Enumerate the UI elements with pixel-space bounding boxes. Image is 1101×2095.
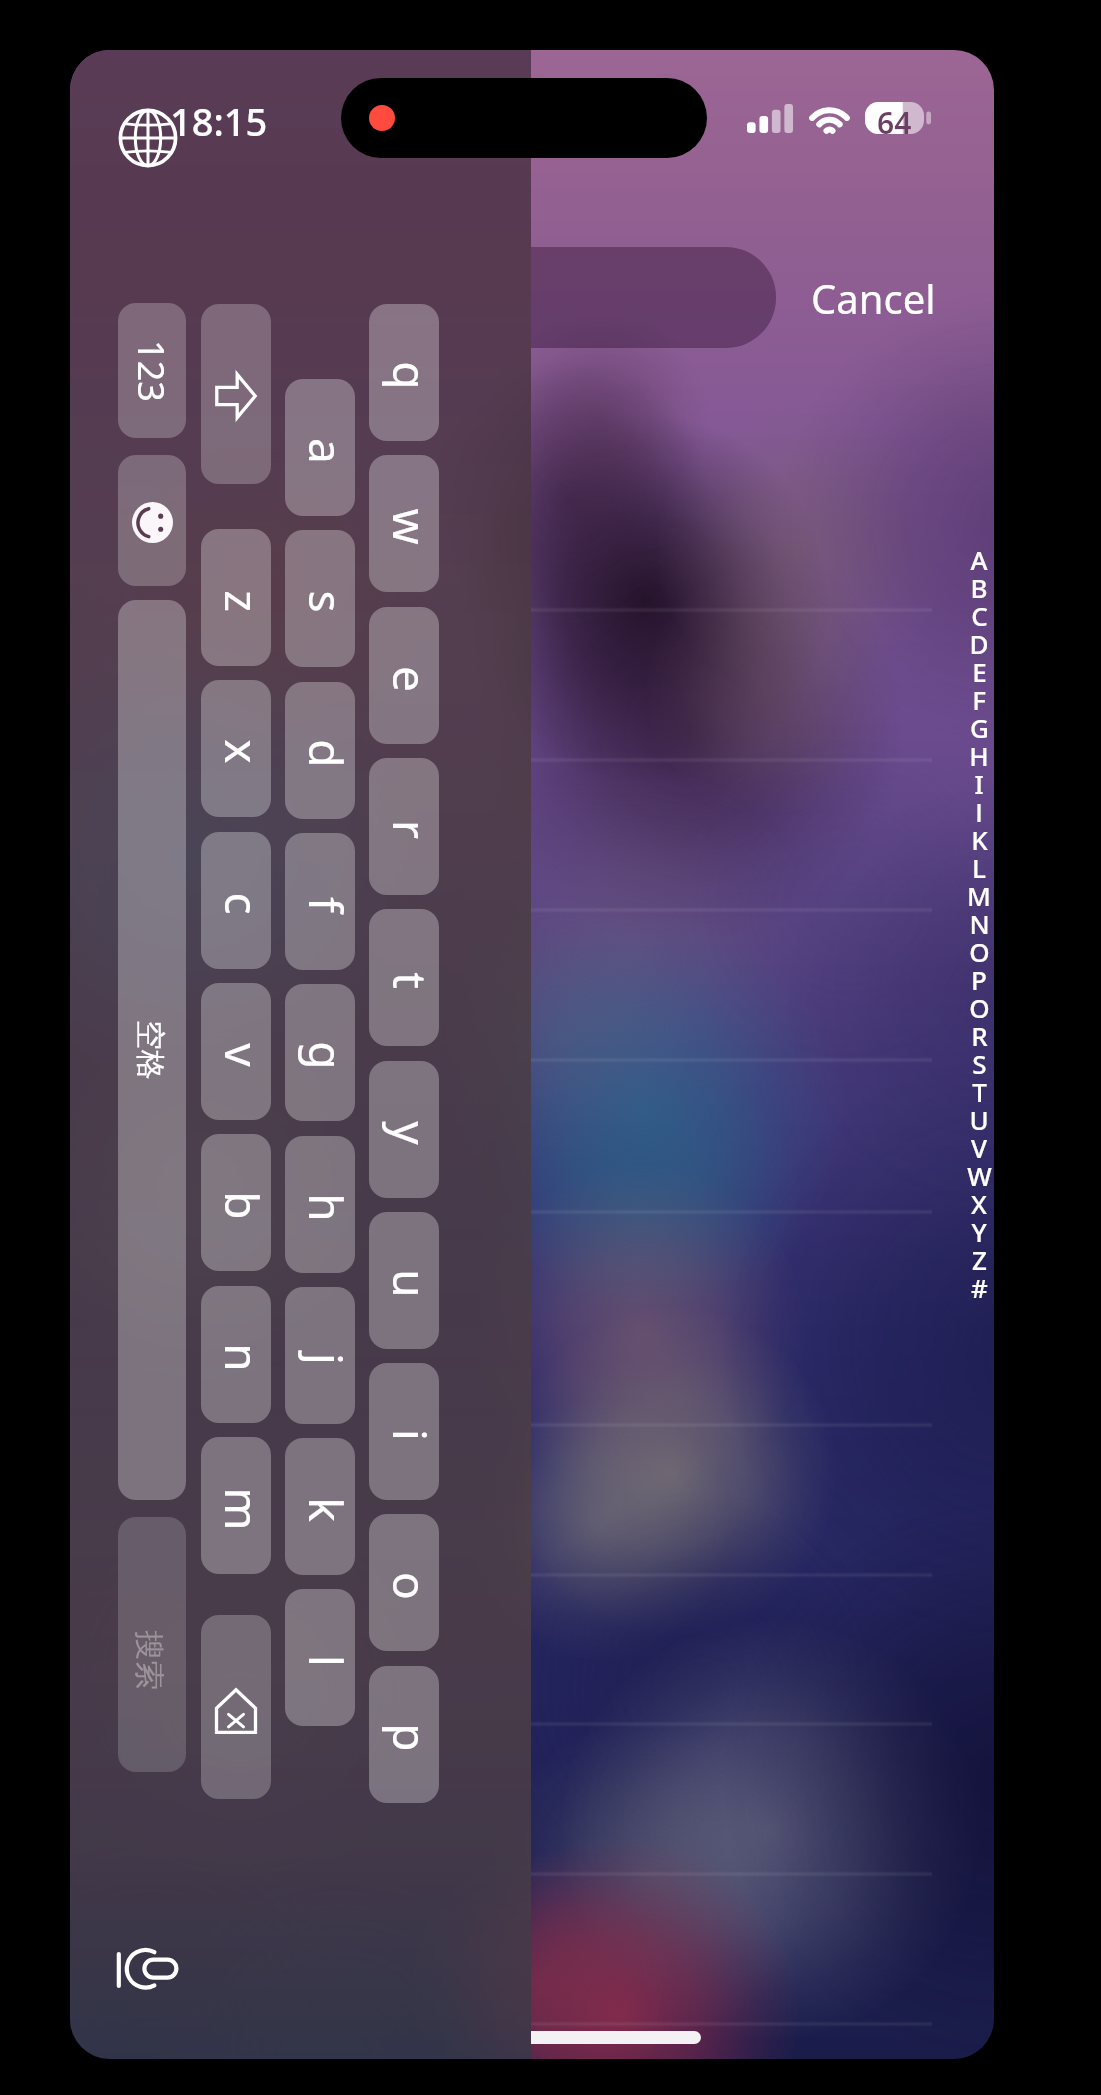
staticText: p (379, 1723, 439, 1752)
button[interactable]: o (369, 1514, 439, 1651)
staticText: V (971, 1130, 987, 1158)
button[interactable] (531, 247, 776, 348)
staticText: Q (969, 990, 990, 1018)
staticText: o (379, 1572, 439, 1600)
button[interactable]: Dictation (108, 1928, 188, 2008)
staticText: 64 (877, 102, 912, 134)
button[interactable]: v (201, 983, 271, 1120)
button[interactable]: m (201, 1437, 271, 1574)
button[interactable]: 搜索 (118, 1517, 186, 1772)
button[interactable]: u (369, 1212, 439, 1349)
staticText: X (971, 1186, 987, 1214)
button[interactable]: y (369, 1061, 439, 1198)
button[interactable]: 123 (118, 303, 186, 438)
staticText: A (970, 542, 988, 570)
staticText: h (295, 1193, 355, 1222)
staticText: z (211, 590, 271, 612)
staticText: Cancel (811, 271, 936, 325)
staticText: H (969, 738, 989, 766)
staticText: B (970, 570, 988, 598)
button[interactable]: f (285, 833, 355, 970)
button[interactable]: 空格 (118, 600, 186, 1500)
button[interactable]: t (369, 909, 439, 1046)
button[interactable]: r (369, 758, 439, 895)
button[interactable]: n (201, 1286, 271, 1423)
staticText: m (211, 1487, 271, 1531)
button[interactable]: i (369, 1363, 439, 1500)
staticText: t (379, 972, 439, 989)
staticText: L (972, 850, 986, 878)
staticText: b (211, 1191, 271, 1220)
staticText: 123 (127, 340, 176, 402)
staticText: T (972, 1074, 987, 1102)
button[interactable]: x (201, 680, 271, 817)
button[interactable]: w (369, 455, 439, 592)
staticText: q (379, 361, 439, 390)
staticText: J (975, 794, 983, 822)
staticText: P (971, 962, 987, 990)
staticText: O (969, 934, 990, 962)
staticText: E (972, 654, 987, 682)
staticText: 18:15 (170, 95, 268, 147)
staticText: y (379, 1121, 439, 1145)
staticText: k (295, 1497, 355, 1522)
button[interactable]: j (285, 1287, 355, 1424)
staticText: S (972, 1046, 987, 1074)
staticText: v (211, 1043, 271, 1067)
button[interactable]: l (285, 1589, 355, 1726)
staticText: l (295, 1655, 355, 1667)
staticText: e (379, 666, 439, 692)
staticText: D (969, 626, 989, 654)
staticText: U (969, 1102, 989, 1130)
staticText: C (971, 598, 988, 626)
button[interactable]: h (285, 1136, 355, 1273)
staticText: G (970, 710, 989, 738)
staticText: f (295, 897, 355, 913)
staticText: Y (971, 1214, 987, 1242)
button[interactable]: d (285, 682, 355, 819)
staticText: i (379, 1429, 439, 1441)
staticText: s (295, 590, 355, 613)
staticText: r (379, 820, 439, 839)
button[interactable]: k (285, 1438, 355, 1575)
staticText: W (967, 1158, 992, 1186)
staticText: F (972, 682, 986, 710)
staticText: n (211, 1343, 271, 1372)
button[interactable]: Cancel (811, 255, 971, 341)
staticText: K (971, 822, 988, 850)
staticText: R (971, 1018, 988, 1046)
staticText: x (211, 739, 271, 764)
button[interactable]: b (201, 1134, 271, 1271)
staticText: N (969, 906, 990, 934)
button[interactable]: Alphabetical index (963, 542, 994, 1298)
staticText: g (295, 1041, 355, 1070)
button[interactable]: g (285, 984, 355, 1121)
button[interactable]: c (201, 832, 271, 969)
staticText: a (295, 438, 355, 464)
staticText: j (295, 1353, 355, 1365)
staticText: M (967, 878, 991, 906)
button[interactable]: e (369, 607, 439, 744)
button[interactable]: q (369, 304, 439, 441)
button[interactable]: emoji (118, 455, 186, 586)
staticText: # (971, 1270, 988, 1298)
staticText: I (974, 766, 984, 794)
staticText: w (379, 508, 439, 545)
staticText: u (379, 1269, 439, 1298)
staticText: Z (972, 1242, 987, 1270)
button[interactable]: del (201, 1615, 271, 1799)
button[interactable]: shift (201, 304, 271, 484)
button[interactable]: s (285, 530, 355, 667)
staticText: 搜索 (129, 1630, 167, 1690)
staticText: c (211, 892, 271, 915)
staticText: d (295, 739, 355, 768)
button[interactable]: a (285, 379, 355, 516)
button[interactable]: p (369, 1666, 439, 1803)
button[interactable]: z (201, 529, 271, 666)
staticText: 空格 (131, 1020, 169, 1080)
